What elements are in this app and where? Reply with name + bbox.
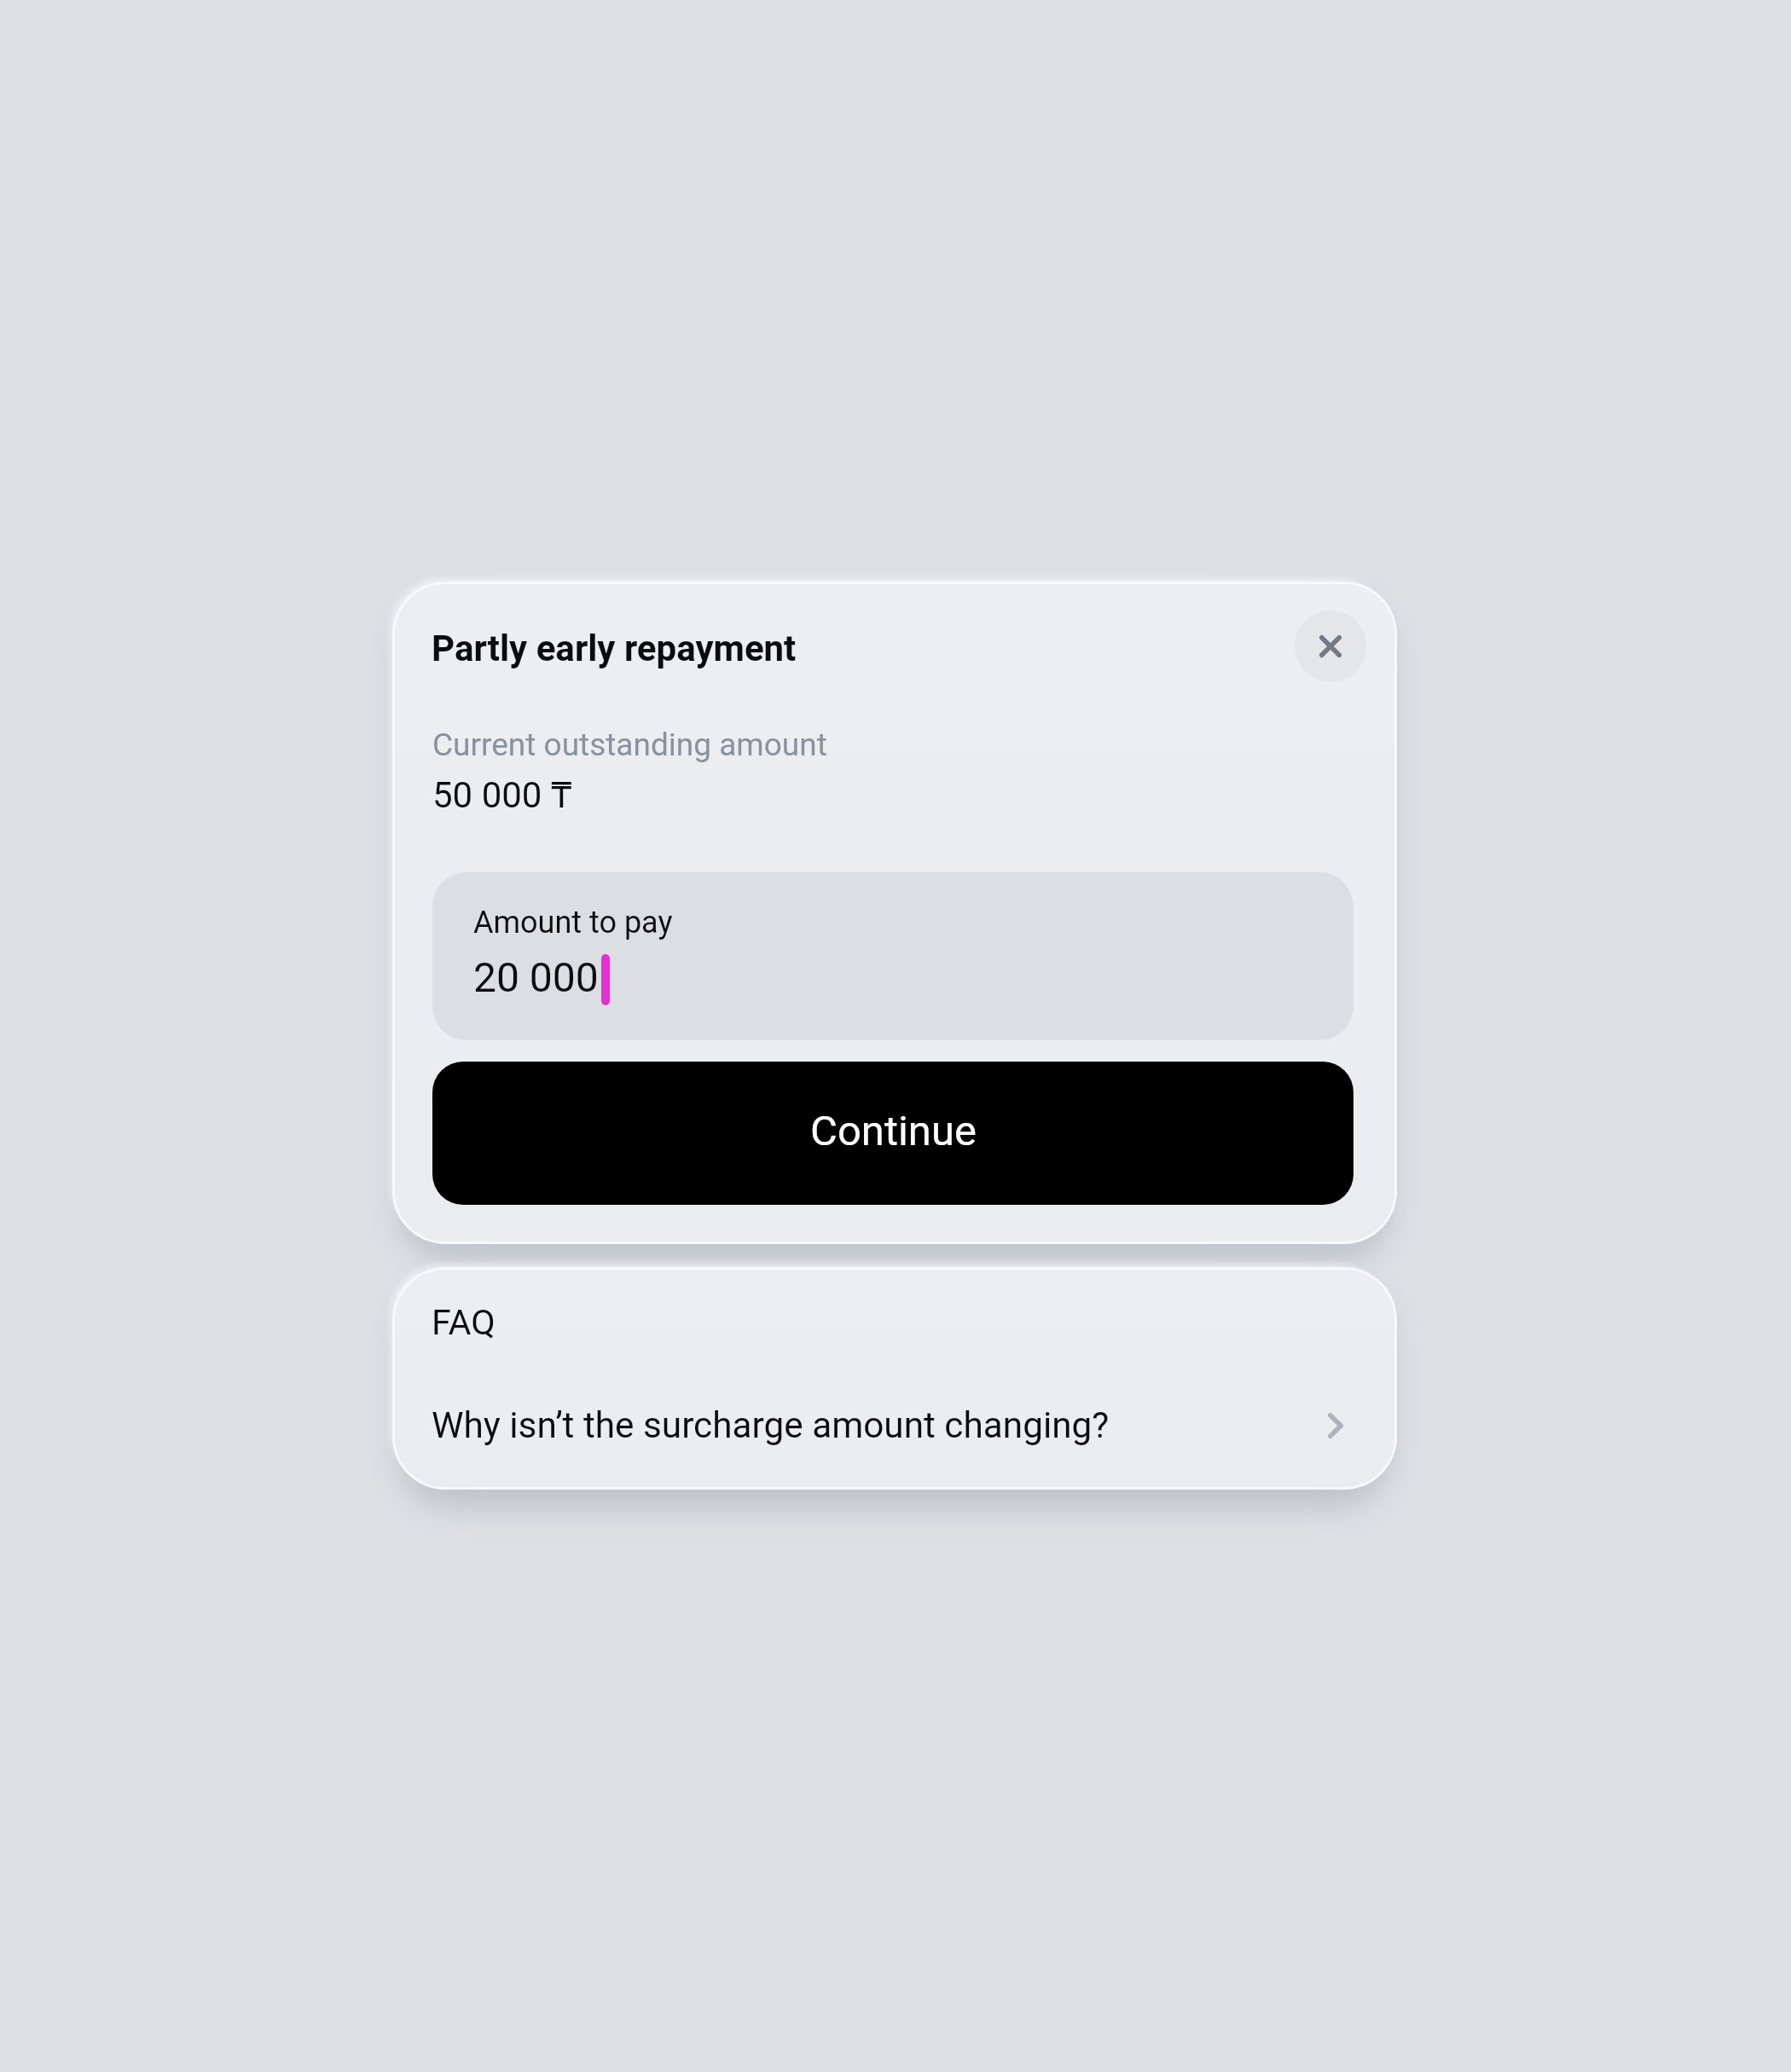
button[interactable]: Close [1295, 611, 1366, 682]
staticText: Continue [810, 1107, 977, 1155]
staticText: Partly early repayment [432, 628, 797, 669]
staticText: 50 000 ₸ [432, 774, 572, 816]
staticText: 20 000 [473, 953, 599, 1001]
staticText: Amount to pay [473, 905, 673, 941]
staticText: Why isn’t the surcharge amount changing? [432, 1404, 1110, 1447]
staticText: FAQ [432, 1302, 496, 1344]
button[interactable]: Why isn’t the surcharge amount changing? [392, 1368, 1397, 1490]
button[interactable]: Continue [432, 1062, 1353, 1205]
button[interactable]: Amount to pay [432, 872, 1353, 1040]
staticText: Current outstanding amount [432, 726, 827, 763]
